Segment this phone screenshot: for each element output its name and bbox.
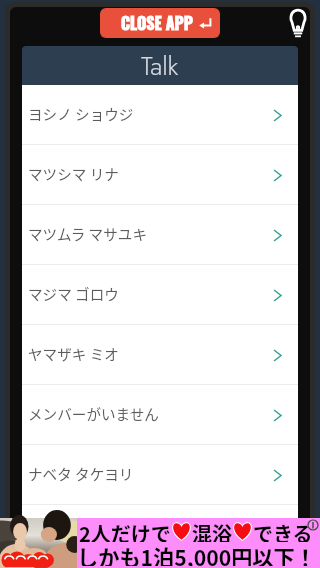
staticText: メンバーがいません xyxy=(28,403,159,424)
staticText: 2人だけで xyxy=(79,519,171,542)
button[interactable]: マジマ ゴロウ xyxy=(22,265,298,325)
staticText: ナベタ タケヨリ xyxy=(28,463,134,484)
button[interactable]: マツシマ リナ xyxy=(22,145,298,205)
button[interactable]: ヨシノ ショウジ xyxy=(22,85,298,145)
staticText: できる xyxy=(253,519,313,542)
staticText: マツムラ マサユキ xyxy=(28,223,147,244)
staticText: ヤマザキ ミオ xyxy=(28,343,119,364)
button[interactable]: 2人だけで xyxy=(0,518,320,568)
staticText: Talk xyxy=(141,47,179,85)
button[interactable]: CLOSE APP xyxy=(100,8,220,38)
button[interactable]: ナベタ タケヨリ xyxy=(22,445,298,505)
staticText: CLOSE APP xyxy=(121,11,193,35)
staticText: マツシマ リナ xyxy=(28,163,119,184)
staticText: 混浴 xyxy=(192,519,232,542)
button[interactable]: メンバーがいません xyxy=(22,385,298,445)
button[interactable]: マツムラ マサユキ xyxy=(22,205,298,265)
staticText: ヨシノ ショウジ xyxy=(28,103,134,124)
button[interactable]: ヤマザキ ミオ xyxy=(22,325,298,385)
staticText: マジマ ゴロウ xyxy=(28,283,119,304)
staticText: しかも1泊5,000円以下！ xyxy=(77,541,316,566)
button[interactable]: Tips xyxy=(285,5,311,41)
